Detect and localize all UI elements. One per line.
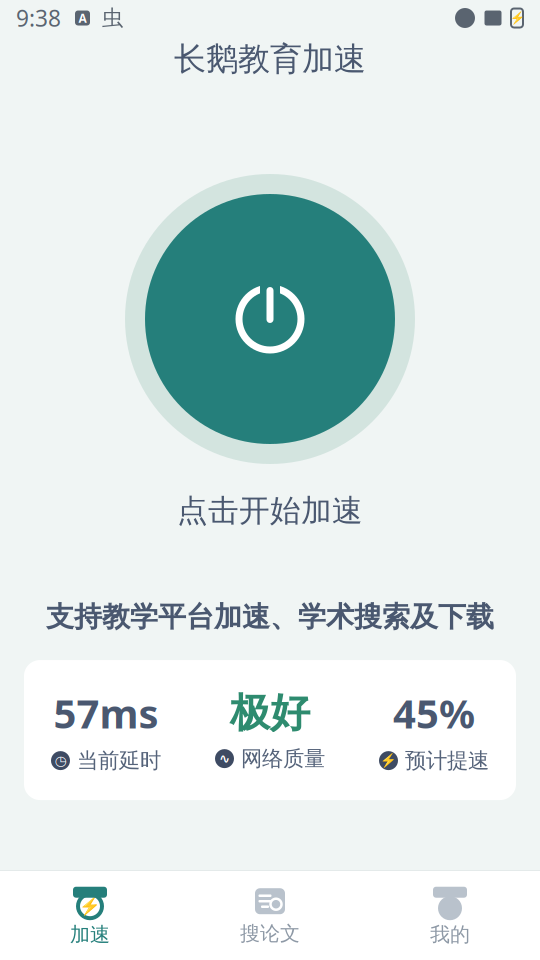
staticText: 45% <box>393 686 475 739</box>
button[interactable]: 搜论文 <box>180 871 360 959</box>
staticText: 当前延时 <box>77 747 161 774</box>
staticText: 加速 <box>70 922 110 947</box>
staticText: 点击开始加速 <box>177 492 363 530</box>
staticText: 极好 <box>230 688 310 737</box>
staticText: 支持教学平台加速、学术搜索及下载 <box>46 600 494 634</box>
staticText: ∿ <box>219 751 230 766</box>
staticText: 网络质量 <box>241 745 325 772</box>
staticText: 我的 <box>430 922 470 947</box>
staticText: ⚡ <box>509 11 524 25</box>
staticText: ⚡ <box>380 753 397 768</box>
staticText: 9:38 <box>16 3 61 33</box>
staticText: 预计提速 <box>405 747 489 774</box>
staticText: 搜论文 <box>240 921 300 946</box>
staticText: ⚡ <box>79 896 101 916</box>
button[interactable]: 我的 <box>360 871 540 959</box>
button[interactable]: ⚡ <box>0 871 180 959</box>
staticText: A <box>78 10 86 26</box>
staticText: 57ms <box>53 686 158 739</box>
button[interactable]: 开始加速 <box>125 174 415 464</box>
staticText: 长鹅教育加速 <box>174 39 366 79</box>
staticText: 虫 <box>102 5 123 31</box>
staticText: ◷ <box>54 753 66 768</box>
